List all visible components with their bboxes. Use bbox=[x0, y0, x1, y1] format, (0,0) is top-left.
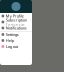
staticText: Premium plan bbox=[6, 23, 25, 27]
button[interactable]: Settings bbox=[0, 31, 32, 37]
button[interactable]: My Profile bbox=[0, 13, 32, 19]
staticText: Log out bbox=[6, 44, 18, 49]
button[interactable]: Log out bbox=[0, 43, 32, 49]
button[interactable]: Help bbox=[0, 37, 32, 43]
button[interactable]: Subscription bbox=[0, 19, 32, 25]
button[interactable]: Notifications bbox=[0, 25, 32, 31]
staticText: My Profile bbox=[6, 13, 24, 19]
staticText: Help bbox=[6, 38, 14, 43]
staticText: Settings bbox=[6, 32, 19, 37]
staticText: Notifications bbox=[6, 25, 27, 31]
staticText: Subscription bbox=[6, 17, 27, 23]
